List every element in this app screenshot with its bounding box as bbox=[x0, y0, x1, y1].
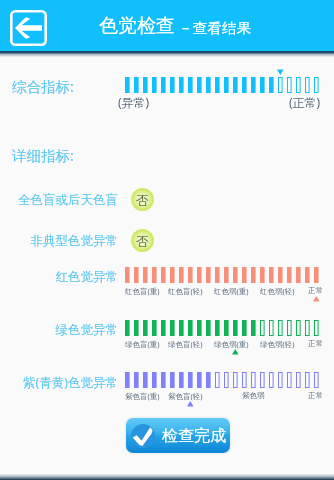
button[interactable]: Back bbox=[10, 10, 47, 46]
staticText: 红色盲(重) bbox=[125, 286, 160, 296]
staticText: 紫色盲(轻) bbox=[168, 391, 203, 401]
staticText: 紫色弱 bbox=[242, 391, 265, 400]
staticText: 绿色觉异常 bbox=[0, 322, 118, 338]
staticText: 检查完成 bbox=[162, 426, 226, 446]
staticText: 红色弱(轻) bbox=[260, 286, 295, 296]
button[interactable]: 否 bbox=[131, 229, 154, 252]
staticText: 绿色弱(轻) bbox=[260, 339, 295, 349]
staticText: 正常 bbox=[308, 339, 323, 348]
staticText: 绿色盲(重) bbox=[125, 339, 160, 349]
staticText: 正常 bbox=[308, 286, 323, 295]
staticText: 紫色盲(重) bbox=[125, 391, 160, 401]
staticText: 正常 bbox=[308, 391, 323, 400]
staticText: 紫(青黄)色觉异常 bbox=[0, 374, 118, 391]
staticText: 否 bbox=[136, 192, 149, 208]
staticText: 红色觉异常 bbox=[0, 269, 118, 285]
staticText: 全色盲或后天色盲 bbox=[0, 192, 118, 208]
staticText: 绿色弱(重) bbox=[214, 339, 249, 349]
staticText: 红色盲(轻) bbox=[168, 286, 203, 296]
staticText: 详细指标: bbox=[12, 145, 74, 165]
staticText: 绿色盲(轻) bbox=[168, 339, 203, 349]
staticText: 否 bbox=[136, 233, 149, 249]
staticText: (正常) bbox=[289, 94, 321, 110]
staticText: – 查看结果 bbox=[182, 17, 252, 37]
staticText: (异常) bbox=[118, 94, 150, 110]
button[interactable]: 否 bbox=[131, 188, 154, 211]
staticText: 红色弱(重) bbox=[214, 286, 249, 296]
button[interactable]: 检查完成 bbox=[126, 418, 230, 453]
staticText: 非典型色觉异常 bbox=[0, 233, 118, 249]
staticText: 色觉检查 bbox=[99, 14, 175, 38]
staticText: 综合指标: bbox=[12, 76, 74, 96]
